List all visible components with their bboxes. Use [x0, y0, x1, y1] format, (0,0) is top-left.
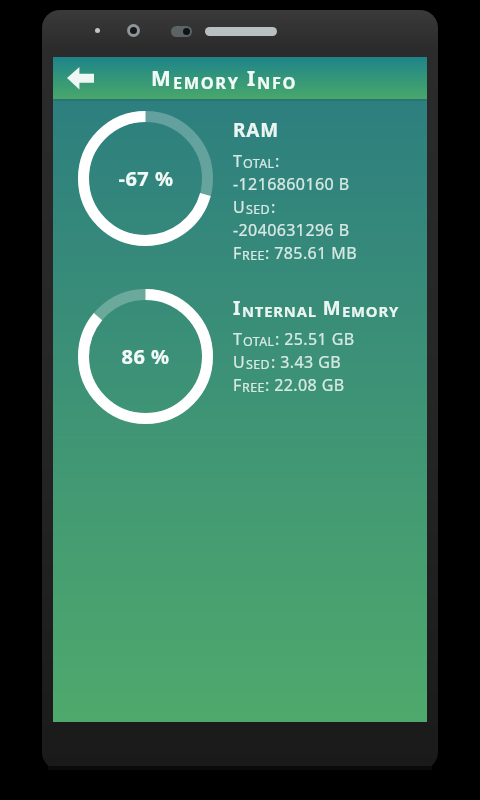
- staticText: NFO: [257, 71, 298, 93]
- staticText: : 22.08 GB: [265, 374, 345, 396]
- staticText: :: [271, 196, 276, 218]
- staticText: RAM: [233, 117, 279, 143]
- staticText: F: [233, 374, 242, 396]
- staticText: REE: [242, 247, 265, 264]
- staticText: NTERNAL: [242, 301, 317, 321]
- button[interactable]: Back: [53, 57, 107, 99]
- staticText: 86 %: [121, 343, 170, 370]
- staticText: M: [151, 64, 173, 93]
- staticText: -67 %: [118, 165, 174, 192]
- staticText: F: [233, 242, 242, 264]
- staticText: EMORY: [173, 71, 240, 93]
- staticText: -2040631296 B: [233, 219, 350, 241]
- staticText: U: [233, 196, 246, 218]
- staticText: OTAL: [243, 333, 275, 350]
- staticText: M: [317, 295, 342, 321]
- staticText: T: [233, 328, 243, 350]
- staticText: : 25.51 GB: [275, 328, 355, 350]
- staticText: : 3.43 GB: [271, 351, 342, 373]
- staticText: I: [240, 64, 257, 93]
- staticText: REE: [242, 379, 265, 396]
- staticText: SED: [246, 201, 271, 218]
- staticText: U: [233, 351, 246, 373]
- staticText: : 785.61 MB: [265, 242, 357, 264]
- staticText: I: [233, 295, 242, 321]
- staticText: T: [233, 150, 243, 172]
- staticText: :: [275, 150, 280, 172]
- staticText: SED: [246, 356, 271, 373]
- staticText: -1216860160 B: [233, 173, 350, 195]
- staticText: OTAL: [243, 155, 275, 172]
- staticText: EMORY: [342, 301, 399, 321]
